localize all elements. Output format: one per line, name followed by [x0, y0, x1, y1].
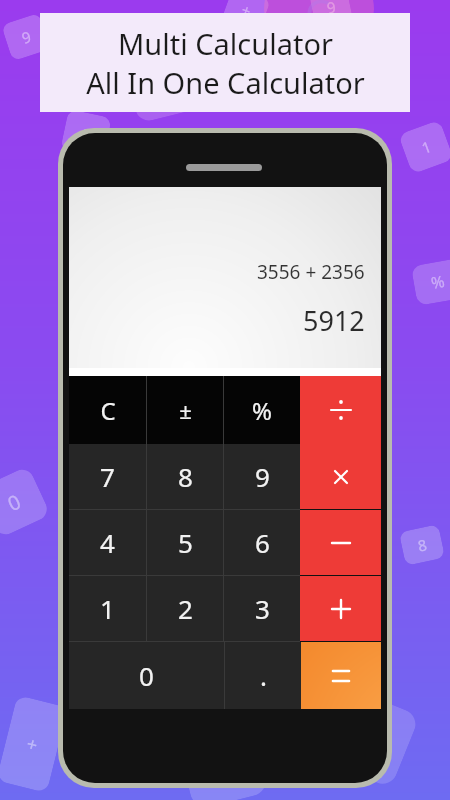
- button[interactable]: Operator: [300, 576, 381, 641]
- button[interactable]: Operator: [300, 444, 381, 509]
- button[interactable]: Equals: [301, 642, 381, 709]
- button[interactable]: 7: [69, 444, 146, 509]
- button[interactable]: 3: [224, 576, 300, 641]
- staticText: .: [260, 658, 267, 693]
- staticText: 5: [178, 525, 193, 560]
- staticText: C: [100, 394, 116, 427]
- button[interactable]: Operator: [300, 510, 381, 575]
- button[interactable]: 1: [69, 576, 146, 641]
- button[interactable]: 8: [147, 444, 223, 509]
- staticText: 5912: [303, 302, 365, 339]
- staticText: 8: [80, 123, 93, 145]
- button[interactable]: ±: [147, 376, 223, 444]
- button[interactable]: 9: [224, 444, 300, 509]
- staticText: 8: [178, 459, 193, 494]
- staticText: C: [305, 0, 331, 30]
- staticText: 0: [3, 488, 25, 517]
- button[interactable]: 6: [224, 510, 300, 575]
- button[interactable]: C: [69, 376, 146, 444]
- staticText: 2: [178, 591, 193, 626]
- staticText: 6: [255, 525, 270, 560]
- button[interactable]: %: [224, 376, 300, 444]
- staticText: 3556 + 2356: [257, 259, 365, 285]
- staticText: ±: [179, 395, 192, 425]
- button[interactable]: .: [225, 642, 301, 709]
- staticText: +: [24, 731, 41, 758]
- staticText: 9: [255, 459, 270, 494]
- staticText: 3: [255, 591, 270, 626]
- button[interactable]: 5: [147, 510, 223, 575]
- staticText: 1: [419, 136, 434, 158]
- staticText: 4: [100, 525, 115, 560]
- staticText: 0: [139, 658, 154, 693]
- staticText: 1: [100, 591, 115, 626]
- staticText: 9: [325, 0, 338, 18]
- staticText: 7: [100, 459, 115, 494]
- staticText: Multi Calculator: [118, 24, 333, 63]
- staticText: +: [239, 0, 254, 21]
- button[interactable]: 4: [69, 510, 146, 575]
- staticText: 8: [416, 534, 429, 556]
- button[interactable]: Divide: [300, 376, 381, 444]
- staticText: %: [252, 394, 272, 427]
- staticText: %: [429, 270, 447, 294]
- button[interactable]: 2: [147, 576, 223, 641]
- button[interactable]: 0: [69, 642, 224, 709]
- staticText: 9: [19, 26, 34, 48]
- staticText: All In One Calculator: [86, 63, 365, 102]
